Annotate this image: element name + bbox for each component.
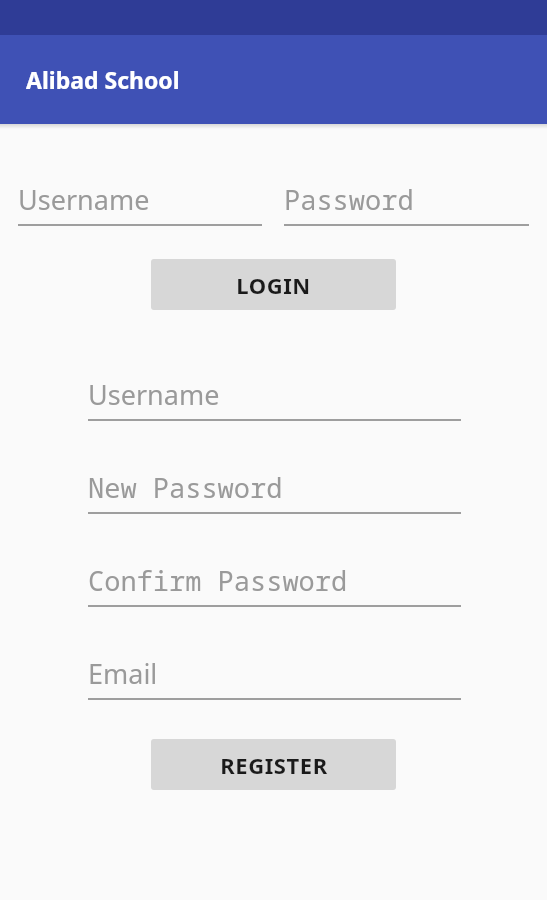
staticText: Username	[18, 181, 150, 218]
staticText: New Password	[88, 469, 283, 506]
staticText: Alibad School	[26, 64, 180, 95]
staticText: Username	[88, 376, 220, 413]
button[interactable]: Username	[18, 176, 262, 226]
button[interactable]: REGISTER	[151, 739, 396, 790]
button[interactable]: LOGIN	[151, 259, 396, 310]
staticText: Confirm Password	[88, 562, 348, 599]
button[interactable]: Email	[88, 650, 461, 700]
button[interactable]: New Password	[88, 464, 461, 514]
button[interactable]: Confirm Password	[88, 557, 461, 607]
staticText: Email	[88, 655, 158, 692]
staticText: LOGIN	[236, 270, 311, 300]
button[interactable]: Password	[284, 176, 529, 226]
button[interactable]: Username	[88, 371, 461, 421]
staticText: Password	[284, 181, 414, 218]
staticText: REGISTER	[220, 750, 328, 780]
